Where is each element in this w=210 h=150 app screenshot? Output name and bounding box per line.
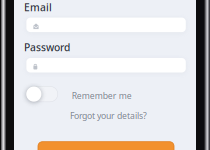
- button[interactable]: Forgot your details?: [70, 110, 147, 122]
- button[interactable]: [38, 142, 174, 150]
- staticText: Email: [24, 0, 52, 14]
- staticText: Forgot your details?: [70, 110, 147, 121]
- button[interactable]: Remember me: [26, 86, 147, 102]
- staticText: Remember me: [72, 90, 132, 101]
- staticText: Password: [24, 40, 70, 54]
